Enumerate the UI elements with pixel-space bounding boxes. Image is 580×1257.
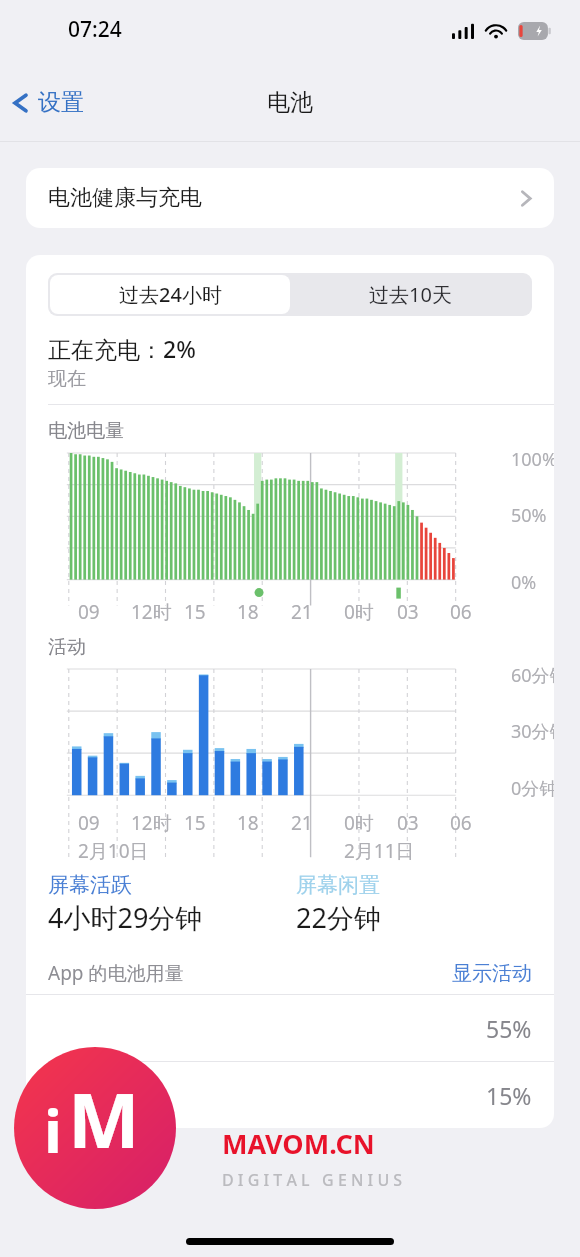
staticText: 电池健康与充电 (48, 184, 202, 212)
staticText: 06 (450, 599, 472, 625)
staticText: 屏幕活跃 (48, 872, 132, 898)
button[interactable]: 15% (26, 1062, 554, 1128)
staticText: 18 (237, 810, 259, 836)
staticText: App 的电池用量 (48, 960, 184, 986)
staticText: 30分钟 (511, 719, 554, 744)
staticText: 21 (291, 599, 313, 625)
staticText: 现在 (48, 367, 86, 391)
staticText: 55% (486, 1013, 532, 1044)
staticText: 2月11日 (344, 838, 415, 864)
staticText: 屏幕闲置 (296, 872, 380, 898)
staticText: 15% (486, 1080, 532, 1111)
staticText: 电池电量 (48, 419, 124, 443)
staticText: 06 (450, 810, 472, 836)
staticText: 18 (237, 599, 259, 625)
staticText: 活动 (48, 635, 86, 659)
staticText: 07:24 (68, 15, 122, 44)
staticText: i (44, 1089, 62, 1171)
button[interactable]: 过去24小时 (50, 275, 290, 314)
staticText: 12时 (131, 810, 172, 836)
staticText: 正在充电：2% (48, 333, 196, 364)
button[interactable]: 显示活动 (452, 961, 532, 986)
staticText: 4小时29分钟 (48, 899, 203, 936)
staticText: 0时 (344, 599, 374, 625)
staticText: 09 (78, 599, 100, 625)
staticText: 21 (291, 810, 313, 836)
staticText: D I G I T A L G E N I U S (222, 1169, 403, 1191)
staticText: 03 (397, 810, 419, 836)
staticText: 12时 (131, 599, 172, 625)
staticText: 过去24小时 (119, 281, 222, 308)
staticText: 0分钟 (511, 776, 554, 801)
staticText: 50% (511, 503, 547, 528)
staticText: 显示活动 (452, 961, 532, 986)
button[interactable]: 55% (26, 995, 554, 1061)
staticText: 0% (511, 570, 537, 595)
button[interactable]: 过去10天 (290, 275, 530, 314)
staticText: M (68, 1067, 140, 1171)
staticText: 60分钟 (511, 663, 554, 688)
staticText: 过去10天 (369, 281, 452, 308)
staticText: 09 (78, 810, 100, 836)
staticText: 电池 (267, 88, 313, 117)
staticText: 03 (397, 599, 419, 625)
staticText: 2月10日 (78, 838, 149, 864)
staticText: MAVOM.CN (222, 1125, 375, 1162)
staticText: 100% (511, 447, 554, 472)
staticText: 15 (184, 599, 206, 625)
staticText: 22分钟 (296, 899, 381, 936)
staticText: 设置 (38, 88, 84, 117)
staticText: 15 (184, 810, 206, 836)
staticText: 0时 (344, 810, 374, 836)
button[interactable]: 电池健康与充电 (26, 168, 554, 228)
button[interactable]: 设置 (0, 82, 94, 123)
